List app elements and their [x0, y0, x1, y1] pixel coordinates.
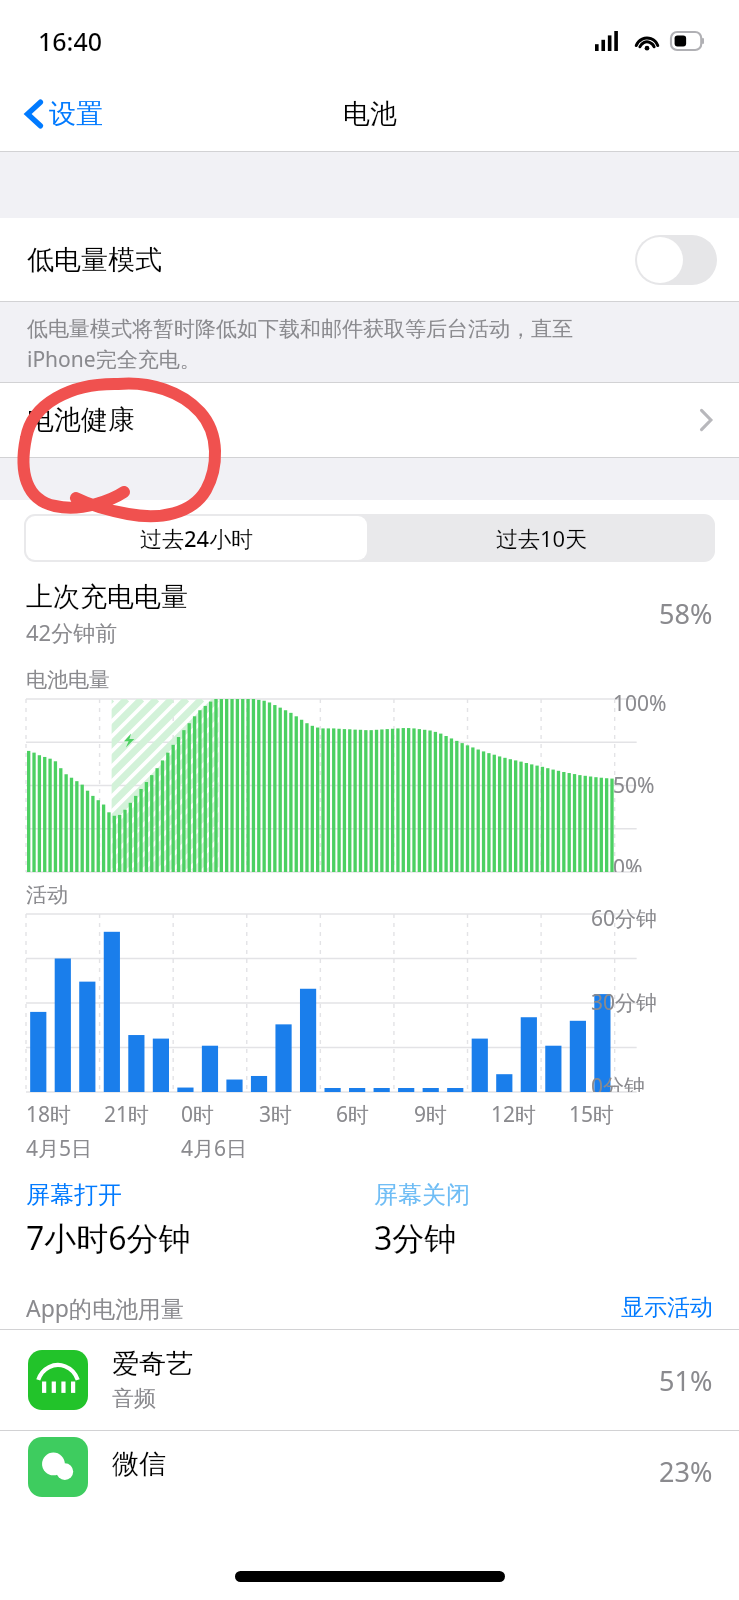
staticText: 上次充电电量 — [26, 580, 188, 614]
staticText: 活动 — [26, 882, 68, 908]
staticText: 过去24小时 — [140, 523, 254, 553]
staticText: 7小时6分钟 — [26, 1216, 191, 1260]
staticText: 音频 — [112, 1385, 156, 1413]
staticText: 微信 — [112, 1447, 166, 1481]
staticText: 3时 — [259, 1100, 293, 1129]
staticText: 低电量模式 — [27, 243, 162, 277]
staticText: 50% — [613, 771, 655, 800]
button[interactable]: 低电量模式 — [0, 218, 739, 302]
staticText: 0分钟 — [591, 1072, 646, 1092]
staticText: 低电量模式将暂时降低如下载和邮件获取等后台活动，直至 — [27, 316, 573, 342]
staticText: 16:40 — [38, 24, 103, 58]
staticText: iPhone完全充电。 — [27, 345, 201, 374]
staticText: 58% — [659, 595, 713, 632]
staticText: 23% — [659, 1453, 713, 1490]
button[interactable]: 过去24小时 — [26, 516, 367, 560]
staticText: 9时 — [414, 1100, 448, 1129]
button[interactable] — [635, 235, 717, 285]
staticText: App的电池用量 — [26, 1292, 184, 1323]
button[interactable]: 爱奇艺 — [0, 1330, 739, 1430]
staticText: 21时 — [104, 1100, 150, 1129]
staticText: 3分钟 — [374, 1216, 457, 1260]
button[interactable]: 过去10天 — [369, 514, 715, 562]
staticText: 显示活动 — [621, 1293, 713, 1322]
staticText: 60分钟 — [591, 904, 658, 933]
staticText: 4月6日 — [181, 1134, 248, 1163]
button[interactable]: 电池健康 — [0, 382, 739, 458]
staticText: 6时 — [336, 1100, 370, 1129]
staticText: 电池电量 — [26, 667, 110, 693]
button[interactable]: 屏幕关闭 — [374, 1180, 739, 1260]
staticText: 0% — [613, 853, 643, 872]
staticText: 电池 — [343, 97, 397, 131]
button[interactable]: 屏幕打开 — [26, 1180, 374, 1260]
staticText: 4月5日 — [26, 1134, 93, 1163]
staticText: 爱奇艺 — [112, 1347, 193, 1381]
staticText: 屏幕关闭 — [374, 1180, 470, 1210]
button[interactable]: 微信 — [0, 1431, 739, 1521]
staticText: 设置 — [49, 97, 103, 131]
staticText: 电池健康 — [27, 403, 135, 437]
button[interactable]: 显示活动 — [621, 1293, 713, 1322]
staticText: 30分钟 — [591, 988, 658, 1017]
staticText: 15时 — [569, 1100, 615, 1129]
staticText: 屏幕打开 — [26, 1180, 122, 1210]
staticText: 18时 — [26, 1100, 72, 1129]
button[interactable]: 设置 — [18, 91, 109, 137]
staticText: 12时 — [491, 1100, 537, 1129]
staticText: 42分钟前 — [26, 617, 118, 647]
staticText: 51% — [659, 1362, 713, 1399]
staticText: 100% — [613, 689, 667, 718]
staticText: 0时 — [181, 1100, 215, 1129]
staticText: 过去10天 — [496, 523, 588, 553]
